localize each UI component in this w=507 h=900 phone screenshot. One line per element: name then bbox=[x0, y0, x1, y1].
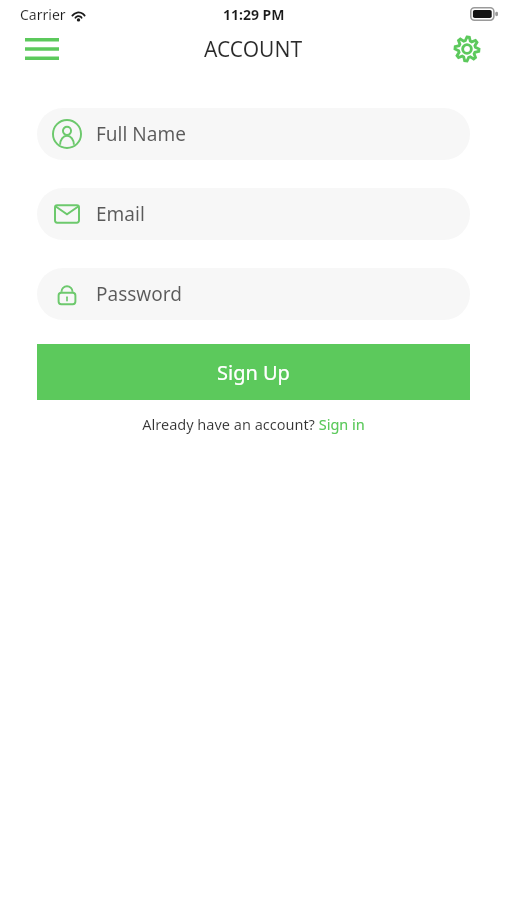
staticText: Full Name bbox=[96, 121, 186, 147]
button[interactable]: Already have an account? Sign in bbox=[142, 414, 365, 434]
staticText: Sign Up bbox=[217, 359, 290, 386]
button[interactable]: Password bbox=[37, 268, 470, 320]
staticText: Password bbox=[96, 281, 182, 307]
staticText: Email bbox=[96, 201, 145, 227]
staticText: 11:29 PM bbox=[223, 5, 285, 24]
button[interactable]: Full Name bbox=[37, 108, 470, 160]
staticText: Carrier bbox=[20, 5, 66, 24]
button[interactable]: Sign Up bbox=[37, 344, 470, 400]
button[interactable]: Email bbox=[37, 188, 470, 240]
staticText: Already have an account? Sign in bbox=[142, 414, 365, 434]
staticText: ACCOUNT bbox=[204, 35, 303, 64]
button[interactable]: Menu bbox=[22, 31, 62, 67]
button[interactable]: Settings bbox=[447, 29, 487, 69]
